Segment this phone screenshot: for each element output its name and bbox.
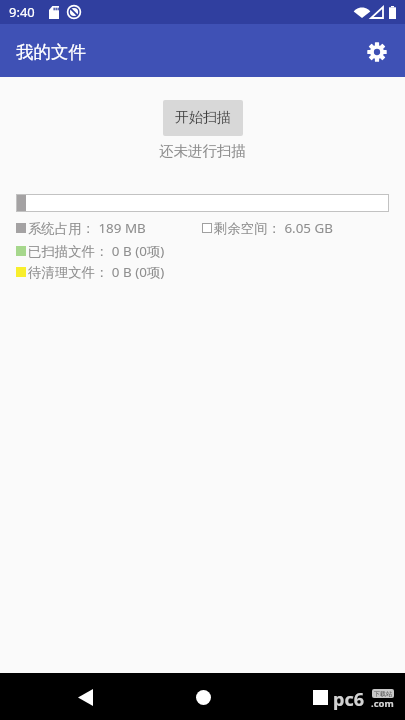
staticText: 我的文件: [16, 41, 86, 63]
staticText: pc6: [333, 687, 364, 711]
button[interactable]: Settings: [355, 30, 399, 74]
staticText: 系统占用： 189 MB: [28, 219, 146, 237]
staticText: 开始扫描: [175, 109, 231, 127]
staticText: 还未进行扫描: [159, 142, 246, 160]
staticText: .com: [371, 697, 394, 710]
staticText: 9:40: [9, 3, 35, 21]
button[interactable]: Back: [65, 677, 105, 717]
button[interactable]: 开始扫描: [163, 100, 243, 136]
button[interactable]: Home: [183, 677, 223, 717]
staticText: 剩余空间： 6.05 GB: [214, 219, 333, 237]
staticText: 待清理文件： 0 B (0项): [28, 263, 165, 281]
staticText: 已扫描文件： 0 B (0项): [28, 242, 165, 260]
button[interactable]: Recents: [300, 677, 340, 717]
staticText: 下载站: [374, 690, 392, 698]
